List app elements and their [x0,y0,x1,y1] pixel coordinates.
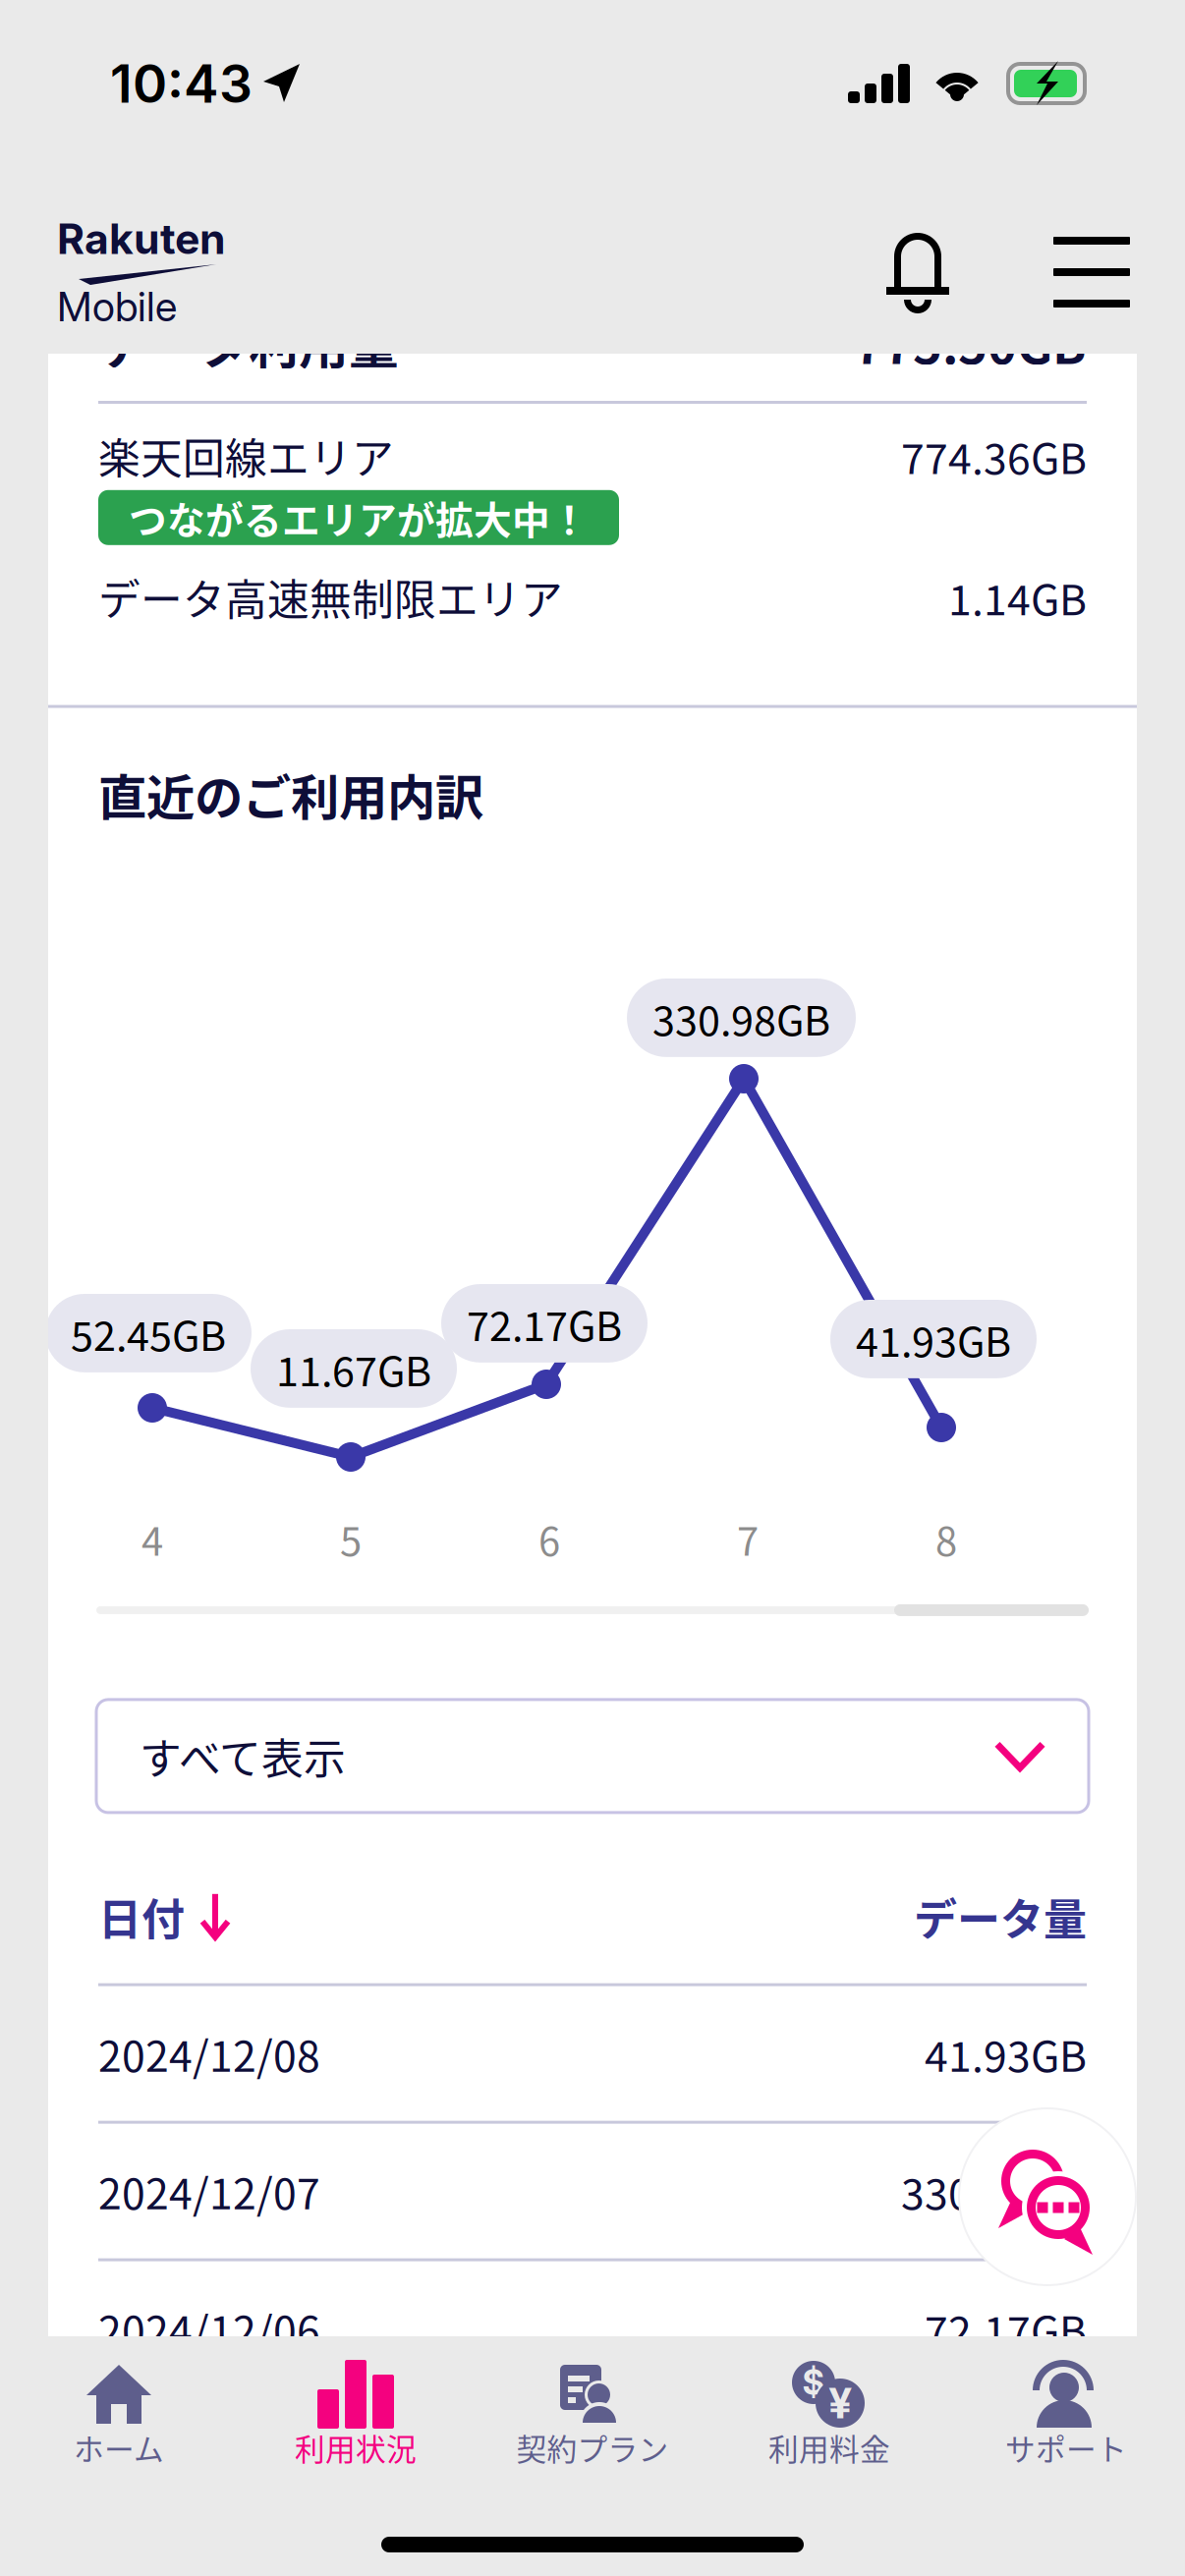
staticText: Rakuten [57,213,226,264]
button[interactable]: サポート [948,2336,1185,2508]
button[interactable]: ホーム [0,2336,237,2508]
staticText: 契約プラン [516,2426,669,2469]
staticText: 10:43 [110,52,253,115]
staticText: 775.50GB [854,306,1087,378]
staticText: 4 [141,1510,163,1567]
button[interactable]: 利用状況 [237,2336,474,2508]
staticText: 72.17GB [925,2298,1087,2359]
staticText: 5 [340,1510,362,1567]
button[interactable]: 2024/12/08 [48,1986,1137,2121]
staticText: サポート [1005,2426,1127,2469]
staticText: $ [802,2362,825,2403]
staticText: 41.93GB [856,1310,1011,1368]
staticText: データ利用量 [98,306,399,378]
staticText: 774.36GB [901,425,1087,486]
staticText: 楽天回線エリア [98,425,394,486]
staticText: データ高速無制限エリア [98,567,563,627]
staticText: ホーム [74,2426,164,2469]
button[interactable]: データ量 [914,1885,1087,1948]
staticText: 6 [538,1510,560,1567]
staticText: 2024/12/07 [98,2161,320,2221]
staticText: 2024/12/08 [98,2023,320,2084]
button[interactable]: $ [711,2336,948,2508]
staticText: 利用状況 [295,2426,417,2469]
staticText: 330.98GB [901,2161,1087,2221]
staticText: 52.45GB [71,1304,226,1363]
button[interactable]: Menu [1053,239,1130,306]
button[interactable]: Rakuten Mobile [57,215,244,329]
staticText: 41.93GB [925,2023,1087,2084]
staticText: 日付 [98,1885,185,1948]
staticText: 利用料金 [768,2426,890,2469]
button[interactable]: Notifications [884,227,951,317]
staticText: 72.17GB [467,1294,622,1353]
staticText: すべて表示 [140,1726,346,1786]
button[interactable]: 日付 [98,1885,232,1948]
staticText: 2024/12/06 [98,2298,320,2359]
staticText: 1.14GB [948,567,1087,627]
button[interactable]: 契約プラン [474,2336,711,2508]
staticText: 8 [935,1510,957,1567]
staticText: 7 [737,1510,759,1567]
staticText: 11.67GB [276,1339,431,1398]
staticText: データ量 [914,1885,1087,1948]
button[interactable]: 2024/12/07 [48,2124,1137,2258]
staticText: Mobile [57,282,177,331]
staticText: 直近のご利用内訳 [98,759,483,829]
button[interactable]: すべて表示 [96,1700,1089,1813]
staticText: ¥ [828,2378,852,2428]
staticText: つながるエリアが拡大中！ [129,490,589,545]
staticText: 330.98GB [652,988,830,1047]
button[interactable]: 2024/12/06 [48,2261,1137,2396]
button[interactable]: Chat support [958,2107,1137,2286]
